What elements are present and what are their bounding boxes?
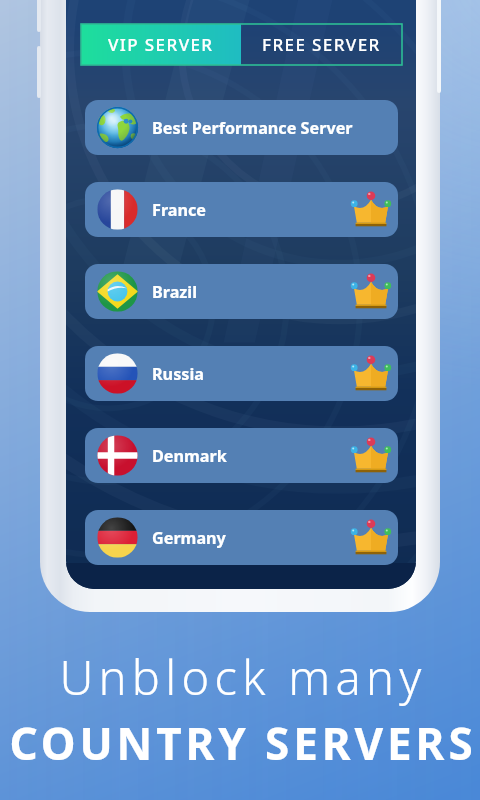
button[interactable]: Denmark bbox=[85, 428, 398, 483]
button[interactable]: France bbox=[85, 182, 398, 237]
button[interactable]: Russia bbox=[85, 346, 398, 401]
staticText: Germany bbox=[152, 527, 226, 549]
staticText: VIP SERVER bbox=[108, 33, 214, 56]
other: Premium server bbox=[351, 436, 391, 476]
staticText: Best Performance Server bbox=[152, 117, 353, 139]
other: Premium server bbox=[351, 354, 391, 394]
button[interactable]: Germany bbox=[85, 510, 398, 565]
button[interactable]: Brazil bbox=[85, 264, 398, 319]
staticText: Denmark bbox=[152, 445, 227, 467]
staticText: FREE SERVER bbox=[262, 33, 381, 56]
other: Premium server bbox=[351, 518, 391, 558]
staticText: France bbox=[152, 199, 207, 221]
staticText: Russia bbox=[152, 363, 204, 385]
staticText: Unblock many bbox=[59, 645, 427, 709]
other: Premium server bbox=[351, 190, 391, 230]
other: Premium server bbox=[351, 272, 391, 312]
button[interactable]: VIP SERVER bbox=[81, 24, 241, 65]
button[interactable]: Best Performance Server bbox=[85, 100, 398, 155]
staticText: Brazil bbox=[152, 281, 198, 303]
staticText: COUNTRY SERVERS bbox=[9, 713, 477, 773]
button[interactable]: FREE SERVER bbox=[241, 24, 402, 65]
